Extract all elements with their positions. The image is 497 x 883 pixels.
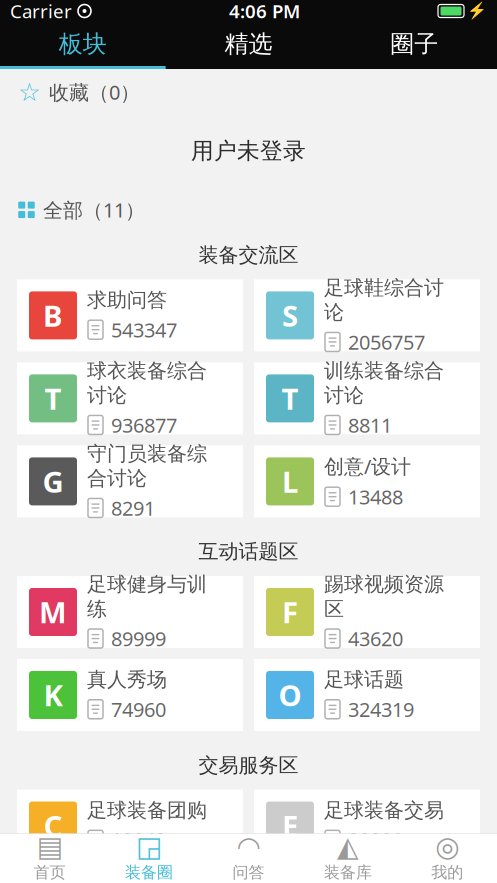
staticText: T (281, 379, 298, 418)
staticText: M (39, 592, 67, 631)
staticText: 问答 (232, 863, 264, 882)
staticText: 装备圈 (125, 863, 173, 882)
staticText: T (44, 379, 61, 418)
staticText: ☆ (18, 78, 41, 106)
staticText: ◲ (136, 831, 162, 863)
staticText: 训练装备综合讨论 (324, 359, 444, 408)
staticText: ◭ (337, 831, 359, 863)
staticText: ▤ (37, 831, 63, 863)
button[interactable]: M (17, 576, 243, 648)
staticText: 互动话题区 (198, 539, 298, 564)
staticText: 足球健身与训练 (87, 572, 207, 621)
staticText: 足球话题 (324, 667, 404, 692)
button[interactable]: ◎ (398, 834, 497, 883)
staticText: 8291 (111, 495, 155, 521)
staticText: 板块 (59, 29, 107, 59)
button[interactable]: C (17, 789, 243, 861)
staticText: 装备交流区 (198, 243, 298, 267)
button[interactable]: ◠ (199, 834, 298, 883)
staticText: ◠ (236, 831, 260, 863)
button[interactable]: T (17, 362, 243, 434)
button[interactable]: S (254, 279, 480, 351)
button[interactable]: 圈子 (331, 22, 497, 66)
staticText: 43620 (348, 625, 403, 652)
staticText: B (43, 296, 63, 335)
button[interactable]: K (17, 659, 243, 731)
staticText: 我的 (431, 863, 463, 882)
button[interactable]: E (254, 789, 480, 861)
staticText: 真人秀场 (87, 667, 167, 692)
staticText: L (282, 462, 298, 501)
staticText: 踢球视频资源区 (324, 572, 444, 621)
staticText: C (43, 806, 62, 845)
button[interactable]: ▤ (0, 834, 99, 883)
staticText: 守门员装备综合讨论 (87, 442, 207, 491)
staticText: Carrier (10, 0, 72, 23)
staticText: G (42, 462, 63, 501)
button[interactable]: ◲ (99, 834, 199, 883)
staticText: 用户未登录 (191, 137, 306, 165)
button[interactable]: 板块 (0, 22, 166, 66)
staticText: E (282, 806, 298, 845)
button[interactable]: L (254, 445, 480, 517)
staticText: 543347 (111, 316, 177, 343)
staticText: 球衣装备综合讨论 (87, 359, 207, 408)
staticText: 装备库 (324, 863, 372, 882)
button[interactable]: 全部（11） (0, 193, 497, 227)
staticText: ◎ (435, 831, 459, 863)
staticText: 足球装备团购 (87, 798, 207, 823)
staticText: 足球鞋综合讨论 (324, 276, 444, 325)
staticText: 324319 (348, 696, 414, 723)
staticText: O (278, 675, 301, 714)
staticText: 4:06 PM (229, 0, 300, 23)
staticText: 足球装备交易 (324, 798, 444, 823)
staticText: 全部（11） (43, 197, 145, 223)
button[interactable]: F (254, 576, 480, 648)
staticText: 936877 (111, 412, 177, 438)
staticText: 收藏（0） (49, 79, 140, 105)
staticText: 12043 (111, 826, 166, 853)
button[interactable]: T (254, 362, 480, 434)
staticText: 交易服务区 (198, 753, 298, 778)
staticText: 13488 (348, 483, 403, 510)
button[interactable]: ☆ (0, 75, 497, 109)
staticText: F (282, 592, 298, 631)
staticText: 创意/设计 (324, 453, 411, 479)
button[interactable]: G (17, 445, 243, 517)
button[interactable]: 精选 (166, 22, 331, 66)
button[interactable]: O (254, 659, 480, 731)
staticText: 求助问答 (87, 288, 167, 312)
staticText: 首页 (34, 863, 66, 882)
staticText: ⚡ (467, 2, 487, 20)
staticText: 圈子 (390, 29, 438, 59)
staticText: 8811 (348, 412, 392, 438)
staticText: 74960 (111, 696, 166, 723)
staticText: 30221 (348, 826, 403, 853)
button[interactable]: ◭ (298, 834, 398, 883)
staticText: S (282, 296, 298, 335)
staticText: 精选 (224, 29, 272, 59)
button[interactable]: B (17, 279, 243, 351)
staticText: K (43, 675, 62, 714)
staticText: 89999 (111, 625, 166, 652)
staticText: 2056757 (348, 329, 425, 355)
